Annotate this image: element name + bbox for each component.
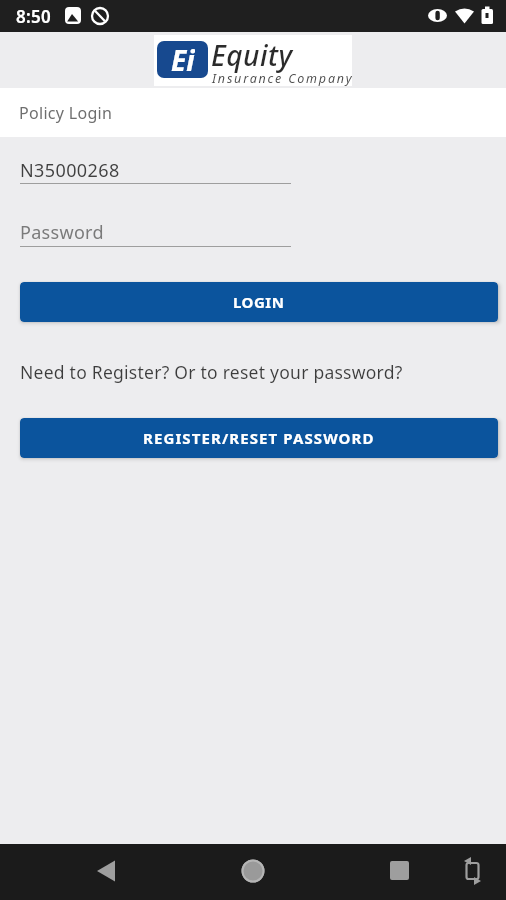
staticText: Need to Register? Or to reset your passw… [20,360,403,384]
staticText: REGISTER/RESET PASSWORD [143,428,375,448]
staticText: Ei [171,41,195,78]
staticText: N35000268 [20,158,120,183]
button[interactable] [225,844,281,900]
staticText: LOGIN [233,292,285,312]
staticText: Policy Login [19,102,113,124]
staticText: Equity [211,36,293,74]
button[interactable]: LOGIN [20,282,498,322]
button[interactable] [448,844,498,900]
staticText: Insurance Company [212,70,354,87]
button[interactable]: REGISTER/RESET PASSWORD [20,418,498,458]
button[interactable] [372,844,428,900]
staticText: 8:50 [16,5,52,28]
staticText: Password [20,220,104,245]
button[interactable] [80,844,136,900]
